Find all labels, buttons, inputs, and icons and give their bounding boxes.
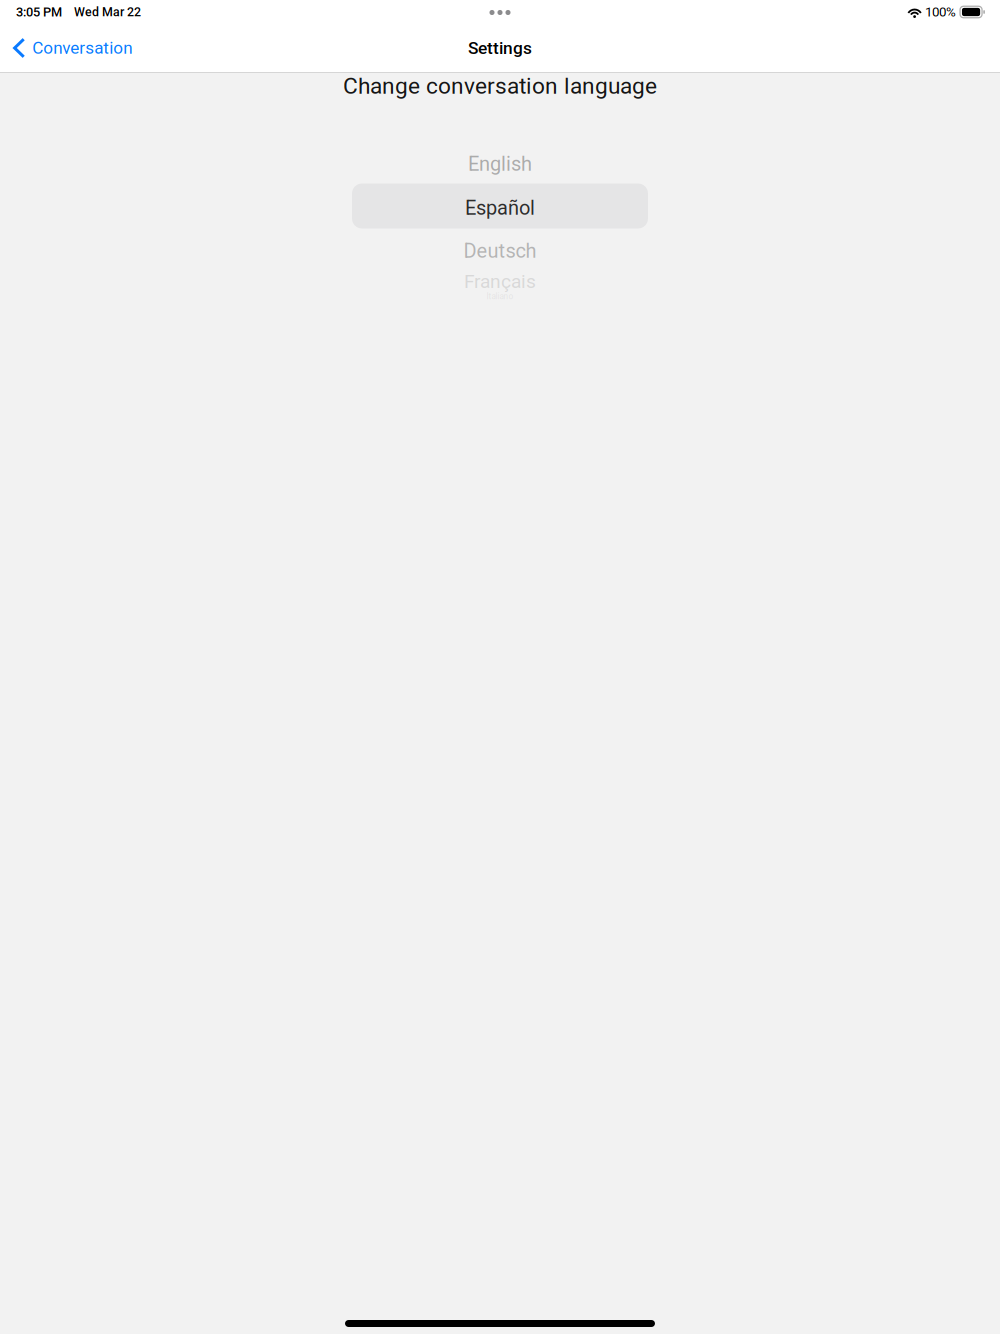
staticText: 100%: [925, 4, 956, 20]
button[interactable]: English: [352, 142, 648, 186]
staticText: English: [468, 152, 532, 176]
button[interactable]: Français: [352, 272, 648, 291]
button[interactable]: Deutsch: [352, 230, 648, 272]
staticText: Deutsch: [463, 239, 536, 263]
staticText: Wed Mar 22: [74, 5, 141, 19]
button[interactable]: Conversation: [0, 31, 144, 65]
staticText: Italiano: [486, 292, 513, 301]
staticText: 3:05 PM: [16, 4, 62, 19]
button[interactable]: Selected: [352, 186, 648, 230]
staticText: Change conversation language: [343, 73, 657, 99]
staticText: Français: [464, 270, 536, 293]
staticText: Settings: [468, 38, 532, 58]
staticText: Español: [465, 196, 535, 220]
staticText: Conversation: [32, 38, 132, 58]
